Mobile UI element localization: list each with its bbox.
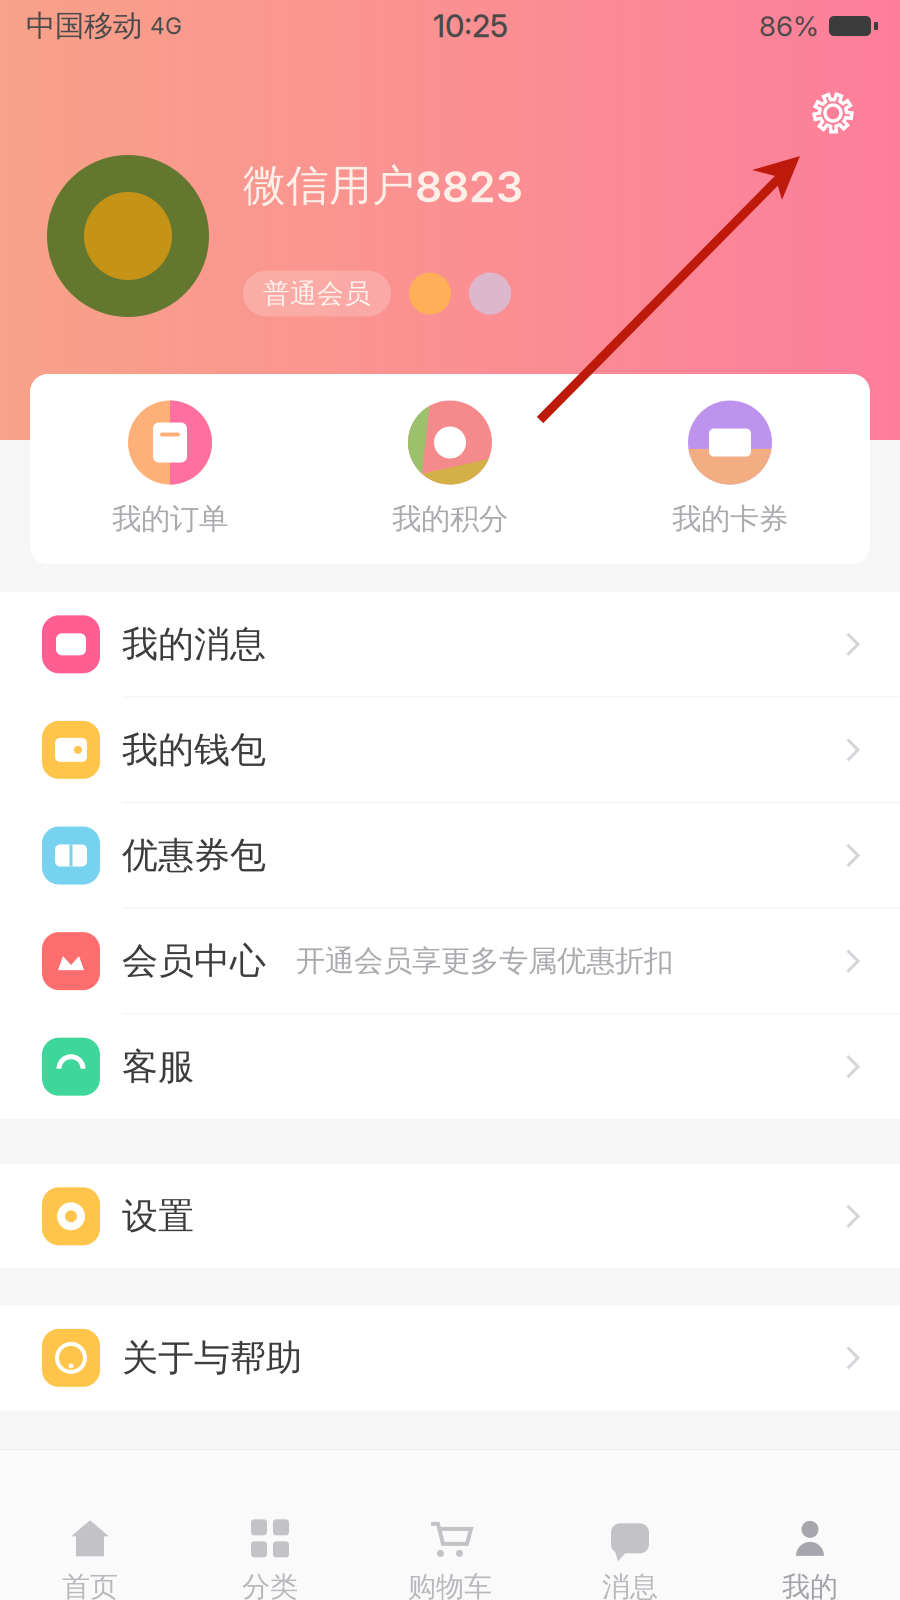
- button[interactable]: 我的卡券: [590, 374, 870, 564]
- button[interactable]: 客服: [0, 1014, 900, 1119]
- staticText: 4G: [150, 12, 182, 40]
- staticText: 中国移动: [26, 7, 142, 44]
- staticText: 分类: [242, 1569, 298, 1600]
- button[interactable]: Settings: [800, 80, 866, 146]
- staticText: 优惠券包: [122, 833, 266, 878]
- staticText: 购物车: [408, 1569, 492, 1600]
- staticText: 客服: [122, 1044, 194, 1089]
- button[interactable]: 设置: [0, 1164, 900, 1269]
- button[interactable]: Profile photo: [47, 155, 209, 317]
- button[interactable]: 我的: [720, 1450, 900, 1600]
- button[interactable]: 我的消息: [0, 592, 900, 698]
- button[interactable]: 关于与帮助: [0, 1306, 900, 1410]
- staticText: 我的钱包: [122, 727, 266, 773]
- button[interactable]: 消息: [540, 1450, 720, 1600]
- staticText: 会员中心: [122, 938, 266, 984]
- button[interactable]: 购物车: [360, 1450, 540, 1600]
- staticText: 86%: [759, 9, 819, 43]
- staticText: 设置: [122, 1194, 194, 1239]
- staticText: 开通会员享更多专属优惠折扣: [296, 943, 673, 980]
- staticText: 我的卡券: [672, 500, 788, 537]
- staticText: 我的消息: [122, 622, 266, 667]
- button[interactable]: 分类: [180, 1450, 360, 1600]
- staticText: 我的订单: [112, 500, 228, 537]
- staticText: 10:25: [433, 7, 508, 44]
- staticText: 普通会员: [263, 277, 371, 310]
- button[interactable]: 首页: [0, 1450, 180, 1600]
- staticText: 我的: [782, 1569, 838, 1600]
- button[interactable]: 优惠券包: [0, 803, 900, 909]
- staticText: 微信用户8823: [243, 159, 523, 213]
- staticText: 关于与帮助: [122, 1335, 302, 1381]
- button[interactable]: 我的积分: [310, 374, 590, 564]
- button[interactable]: 我的订单: [30, 374, 310, 564]
- button[interactable]: 我的钱包: [0, 698, 900, 803]
- staticText: 我的积分: [392, 500, 508, 537]
- staticText: 首页: [62, 1569, 118, 1600]
- staticText: 消息: [602, 1569, 658, 1600]
- button[interactable]: 会员中心: [0, 909, 900, 1014]
